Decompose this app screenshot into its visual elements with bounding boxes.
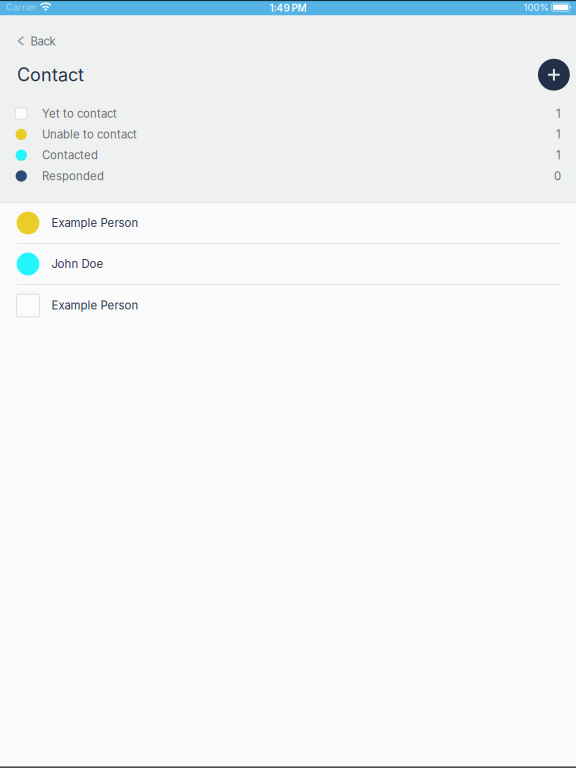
staticText: 1 [556,107,561,120]
button[interactable]: John Doe [0,244,576,285]
staticText: 100% [524,1,549,13]
button[interactable]: Example Person [0,203,576,244]
staticText: Responded [42,169,104,183]
staticText: 0 [554,169,561,183]
staticText: Carrier [6,2,36,13]
staticText: Contact [17,64,84,86]
staticText: 1:49 PM [269,2,306,14]
staticText: 1 [556,128,561,141]
staticText: Example Person [51,299,138,312]
staticText: John Doe [51,257,103,271]
staticText: 1 [556,148,561,162]
button[interactable]: Back [0,15,67,56]
staticText: Yet to contact [42,107,117,120]
staticText: Back [30,34,55,48]
staticText: Unable to contact [42,128,137,141]
staticText: Contacted [42,148,98,162]
staticText: Example Person [51,216,138,230]
button[interactable]: Example Person [0,285,576,326]
button[interactable]: Add contact [538,59,570,91]
